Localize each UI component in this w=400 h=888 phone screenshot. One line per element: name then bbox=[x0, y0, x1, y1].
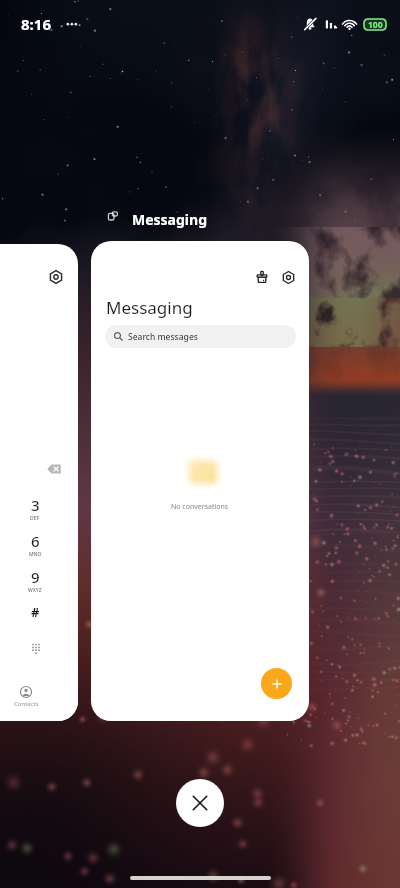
staticText: # bbox=[31, 603, 40, 621]
staticText: 6 bbox=[31, 531, 40, 551]
staticText: 3 bbox=[31, 495, 40, 515]
button[interactable]: Contacts bbox=[0, 686, 54, 708]
button[interactable]: New conversation bbox=[261, 668, 292, 699]
staticText: No conversations bbox=[171, 502, 229, 512]
staticText: Messaging bbox=[106, 296, 193, 319]
other: Split screen bbox=[108, 211, 118, 221]
staticText: 8:16 bbox=[21, 14, 51, 34]
staticText: Contacts bbox=[14, 700, 39, 708]
staticText: DEF bbox=[30, 515, 40, 522]
button[interactable]: Settings bbox=[47, 268, 65, 286]
staticText: Search messages bbox=[128, 331, 198, 343]
staticText: Messaging bbox=[132, 210, 207, 229]
button[interactable]: Clean up bbox=[251, 266, 273, 288]
other: Backspace bbox=[47, 464, 61, 474]
button[interactable]: Settings bbox=[0, 244, 78, 721]
staticText: 100 bbox=[368, 19, 383, 31]
button[interactable]: Close all bbox=[176, 779, 224, 827]
button[interactable]: Settings bbox=[277, 266, 299, 288]
other: Dialpad bbox=[31, 643, 41, 653]
button[interactable]: Search messages bbox=[105, 325, 296, 348]
staticText: MNO bbox=[29, 551, 42, 558]
button[interactable]: Clean up bbox=[91, 241, 309, 721]
staticText: 9 bbox=[31, 567, 40, 587]
staticText: WXYZ bbox=[28, 587, 42, 594]
